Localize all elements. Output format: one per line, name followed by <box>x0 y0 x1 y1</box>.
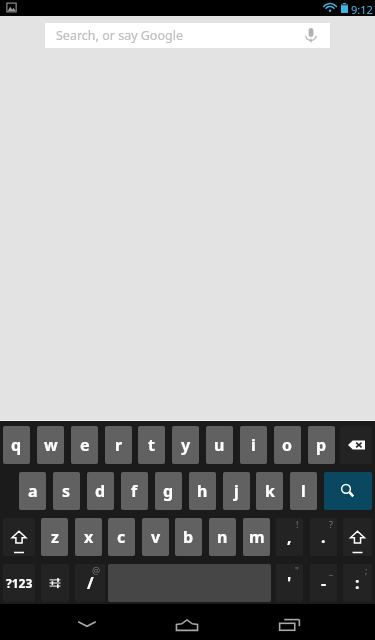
staticText: d <box>95 480 106 502</box>
staticText: t <box>148 434 155 456</box>
staticText: s <box>62 480 71 502</box>
button[interactable]: Recent apps <box>259 604 319 640</box>
staticText: m <box>249 526 265 548</box>
button[interactable]: / <box>75 564 105 602</box>
button[interactable]: h <box>189 472 216 510</box>
button[interactable]: d <box>87 472 114 510</box>
button[interactable]: w <box>37 426 64 464</box>
button[interactable]: z <box>41 518 68 556</box>
staticText: e <box>80 434 90 456</box>
button[interactable]: f <box>121 472 148 510</box>
staticText: z <box>51 526 59 548</box>
button[interactable]: a <box>19 472 46 510</box>
staticText: ! <box>296 518 299 530</box>
staticText: - <box>321 572 327 594</box>
button[interactable]: r <box>105 426 132 464</box>
staticText: , <box>287 526 292 548</box>
staticText: a <box>28 480 38 502</box>
button[interactable]: Shift <box>3 518 35 556</box>
button[interactable]: ?123 <box>3 564 35 602</box>
other: Shift <box>3 518 35 556</box>
button[interactable]: Input method <box>41 564 69 602</box>
button[interactable]: . <box>310 518 337 556</box>
button[interactable]: i <box>240 426 267 464</box>
button[interactable]: u <box>206 426 233 464</box>
other: Delete <box>348 440 365 450</box>
button[interactable]: n <box>209 518 236 556</box>
button[interactable]: y <box>172 426 199 464</box>
button[interactable]: Delete <box>340 426 372 464</box>
button[interactable]: Hide keyboard <box>57 604 117 640</box>
button[interactable]: x <box>75 518 102 556</box>
button[interactable]: t <box>138 426 165 464</box>
staticText: ' <box>287 572 292 594</box>
staticText: ?123 <box>6 575 33 591</box>
staticText: q <box>11 434 22 456</box>
button[interactable]: o <box>274 426 301 464</box>
staticText: f <box>131 480 138 502</box>
staticText: : <box>355 572 360 594</box>
staticText: y <box>181 434 191 456</box>
staticText: p <box>316 434 327 456</box>
button[interactable]: p <box>308 426 335 464</box>
staticText: @ <box>92 564 101 576</box>
button[interactable]: ' <box>276 564 303 602</box>
staticText: . <box>321 526 326 548</box>
staticText: j <box>234 480 239 502</box>
button[interactable]: v <box>142 518 169 556</box>
staticText: c <box>117 526 126 548</box>
staticText: v <box>151 526 161 548</box>
staticText: h <box>197 480 208 502</box>
staticText: r <box>115 434 123 456</box>
staticText: " <box>295 564 299 576</box>
button[interactable]: Home <box>157 604 217 640</box>
staticText: l <box>301 480 306 502</box>
staticText: o <box>282 434 293 456</box>
button[interactable]: k <box>256 472 283 510</box>
staticText: b <box>183 526 194 548</box>
other: Search <box>324 472 372 510</box>
button[interactable]: c <box>108 518 135 556</box>
staticText: w <box>44 434 58 456</box>
staticText: ? <box>329 518 333 530</box>
other: Input method <box>41 564 69 602</box>
staticText: / <box>87 572 94 594</box>
button[interactable]: b <box>175 518 202 556</box>
staticText: 9:12 <box>351 2 373 17</box>
staticText: u <box>214 434 225 456</box>
button[interactable]: l <box>290 472 317 510</box>
staticText: n <box>217 526 228 548</box>
button[interactable]: : <box>343 564 372 602</box>
button[interactable]: m <box>243 518 270 556</box>
staticText: Search, or say Google <box>56 27 183 44</box>
button[interactable]: q <box>3 426 30 464</box>
button[interactable]: - <box>310 564 337 602</box>
staticText: g <box>163 480 174 502</box>
button[interactable]: Search, or say Google <box>45 23 330 48</box>
staticText: k <box>265 480 275 502</box>
button[interactable]: g <box>155 472 182 510</box>
button[interactable]: e <box>71 426 98 464</box>
button[interactable]: j <box>223 472 250 510</box>
button[interactable]: s <box>53 472 80 510</box>
staticText: i <box>251 434 256 456</box>
button[interactable]: Shift <box>343 518 372 556</box>
other: Shift <box>343 518 372 556</box>
staticText: _ <box>329 564 333 576</box>
staticText: ; <box>365 564 368 576</box>
button[interactable]: Search <box>324 472 372 510</box>
button[interactable]: , <box>276 518 303 556</box>
staticText: x <box>84 526 94 548</box>
